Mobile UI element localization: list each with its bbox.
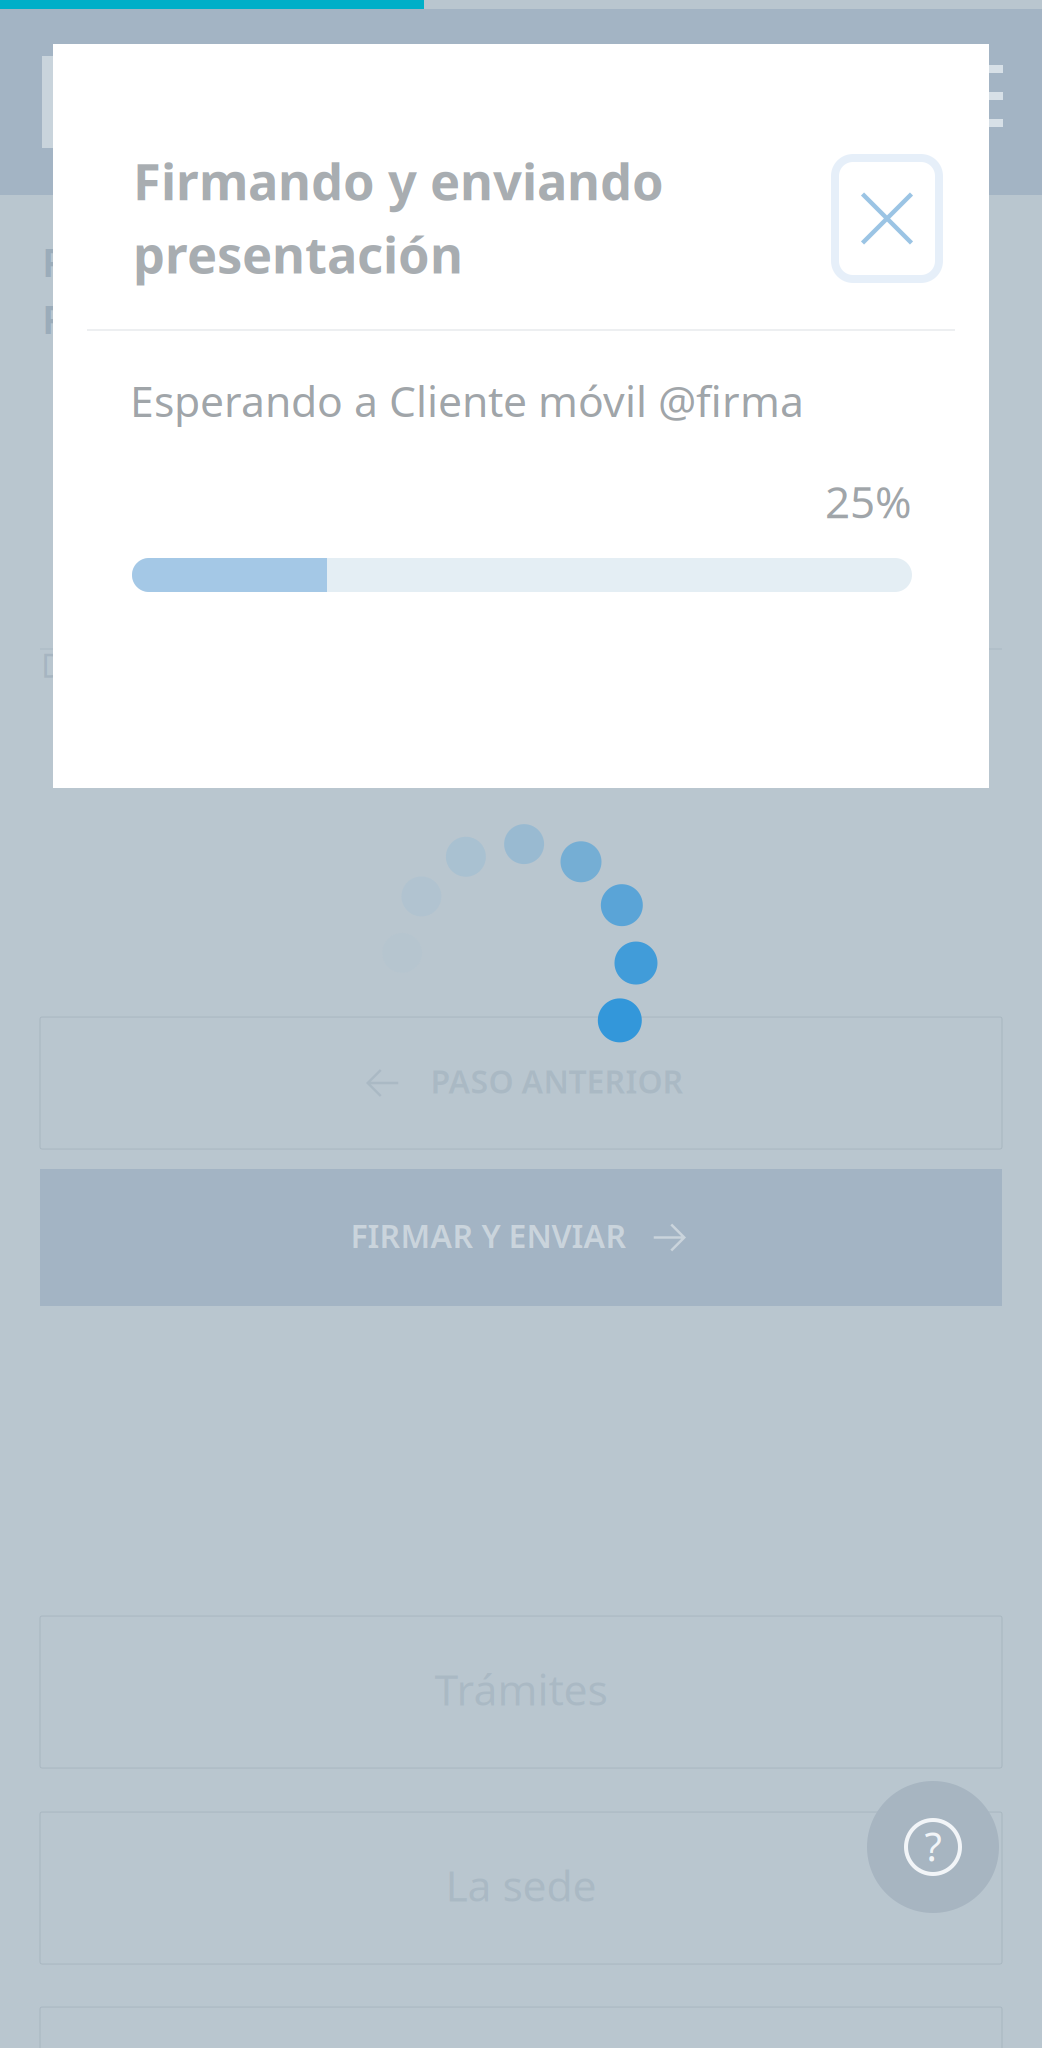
button[interactable]: La sede [40,1812,1002,1964]
staticText: Documento adjunto [41,644,342,686]
staticText: Presentación del [42,235,366,288]
staticText: PASO ANTERIOR [430,1060,683,1102]
staticText: ? [924,1819,941,1872]
staticText: Paso 4 de 4 [42,292,259,345]
staticText: Trámites [434,1661,607,1717]
button[interactable]: Cerrar [831,154,943,283]
staticText: Esperando a Cliente móvil @firma [130,372,804,429]
staticText: La sede [445,1857,596,1913]
staticText: Firmando y enviando presentación [133,147,664,288]
button[interactable]: PASO ANTERIOR [40,1017,1002,1149]
button[interactable]: FIRMAR Y ENVIAR [40,1169,1002,1306]
staticText: FIRMAR Y ENVIAR [350,1214,626,1257]
staticText: 25% [825,472,912,530]
button[interactable]: Ayuda [867,1781,999,1913]
